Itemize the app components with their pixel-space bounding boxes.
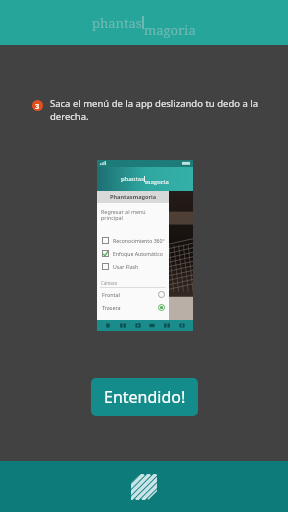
staticText: Phantasmagoria	[110, 193, 157, 201]
button[interactable]: Tool 4	[148, 322, 156, 329]
staticText: phantas	[92, 14, 142, 32]
button[interactable]: Regresar al menú principal	[97, 206, 169, 224]
staticText: Usar Flash	[113, 263, 139, 270]
staticText: magoria	[145, 178, 169, 186]
button[interactable]: Phantasmagoria logo	[131, 474, 157, 500]
button[interactable]: Tool 2	[119, 322, 127, 329]
staticText: Reconocimiento 360°	[113, 237, 165, 244]
button[interactable]: Trasera	[97, 301, 169, 314]
button[interactable]: Tool 3	[134, 322, 142, 329]
button[interactable]: Usar Flash	[97, 260, 169, 273]
staticText: Regresar al menú principal	[101, 208, 165, 222]
button[interactable]: Tool 5	[163, 322, 171, 329]
button[interactable]: Entendido!	[91, 378, 198, 416]
staticText: Cámara	[101, 280, 117, 286]
button[interactable]: Frontal	[97, 288, 169, 301]
staticText: 3	[35, 101, 40, 111]
staticText: Frontal	[102, 291, 120, 298]
button[interactable]: Tool 6	[178, 322, 186, 329]
button[interactable]: Enfoque Automático	[97, 247, 169, 260]
staticText: phantas	[121, 175, 144, 183]
button[interactable]: Reconocimiento 360°	[97, 234, 169, 247]
staticText: Entendido!	[104, 386, 186, 408]
staticText: Saca el menú de la app deslizando tu ded…	[50, 97, 259, 123]
staticText: Enfoque Automático	[113, 250, 163, 257]
staticText: magoria	[144, 21, 196, 39]
button[interactable]: Tool 1	[104, 322, 112, 329]
staticText: Trasera	[102, 304, 121, 311]
